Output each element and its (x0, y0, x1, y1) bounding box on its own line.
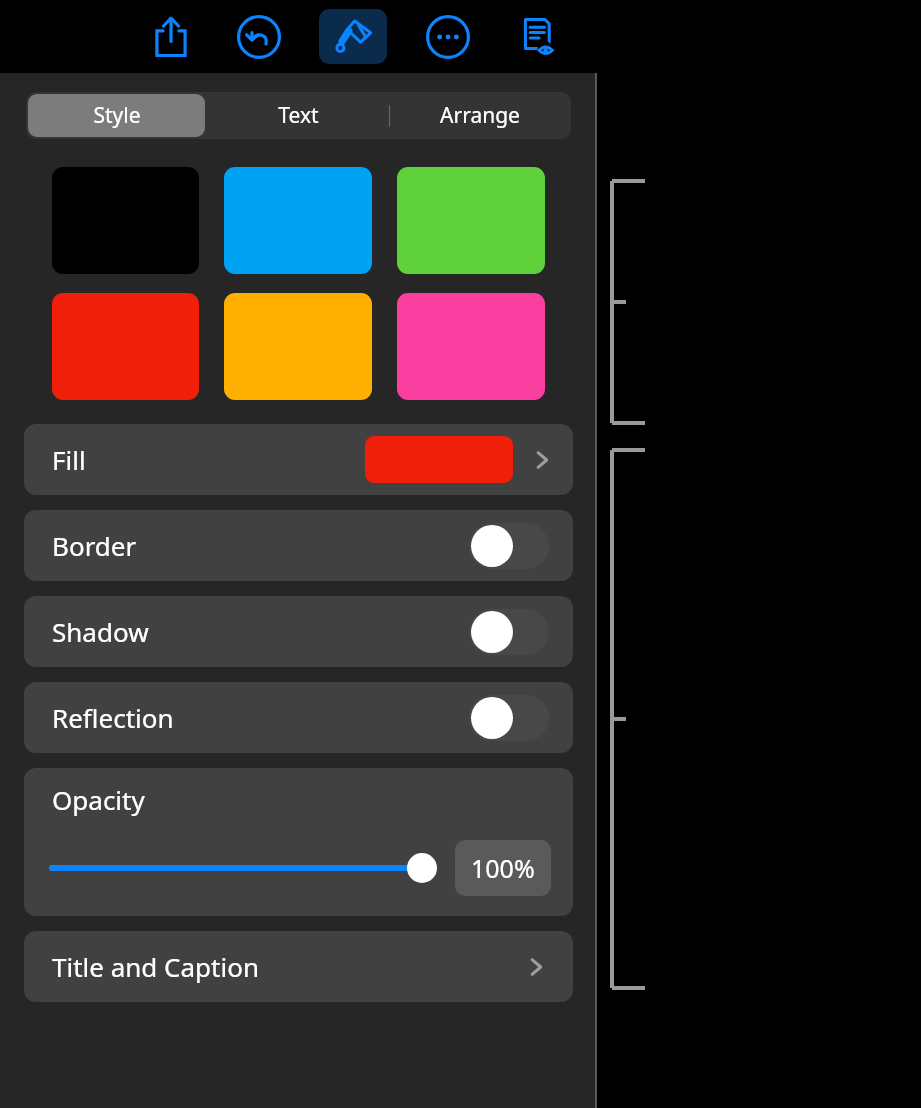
staticText: Shadow (52, 614, 149, 649)
button[interactable]: Text (207, 92, 389, 139)
button[interactable]: 100% (455, 840, 551, 896)
button[interactable]: Opacity (24, 768, 573, 916)
staticText: Fill (52, 442, 86, 477)
button[interactable]: Style swatch (224, 293, 372, 400)
button[interactable]: Style (28, 94, 205, 137)
staticText: 100% (471, 851, 535, 885)
button[interactable]: Shadow (24, 596, 573, 667)
button[interactable]: Style swatch (224, 167, 372, 274)
button[interactable]: Share (143, 9, 198, 64)
staticText: Border (52, 528, 137, 563)
button[interactable]: Format (319, 9, 387, 64)
staticText: Reflection (52, 700, 174, 735)
staticText: Text (278, 101, 319, 130)
staticText: Arrange (440, 101, 520, 130)
button[interactable]: Style swatch (397, 167, 545, 274)
button[interactable]: Arrange (389, 92, 571, 139)
button[interactable]: Document options (508, 9, 563, 64)
button[interactable]: More options (420, 9, 475, 64)
staticText: Title and Caption (52, 949, 259, 984)
button[interactable]: Style swatch (397, 293, 545, 400)
button[interactable]: Title and Caption (24, 931, 573, 1002)
staticText: Opacity (52, 782, 145, 817)
button[interactable]: Style swatch (52, 293, 199, 400)
button[interactable]: Border (24, 510, 573, 581)
button[interactable]: Undo (231, 9, 286, 64)
staticText: Style (93, 101, 141, 130)
button[interactable]: Reflection (24, 682, 573, 753)
button[interactable]: Fill (24, 424, 573, 495)
